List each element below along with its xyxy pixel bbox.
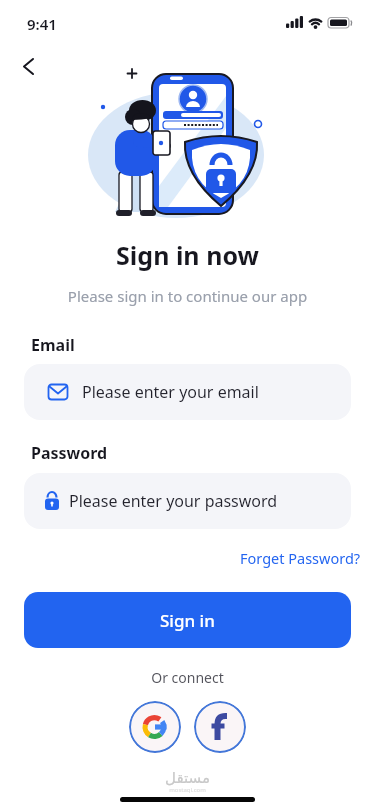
button[interactable]: Please enter your email xyxy=(24,364,351,420)
staticText: mostaql.com xyxy=(0,786,375,794)
button[interactable]: Forget Password? xyxy=(236,544,365,572)
staticText: Password xyxy=(31,442,108,464)
button[interactable]: Sign in xyxy=(24,592,351,648)
staticText: Please enter your email xyxy=(82,381,259,403)
button[interactable] xyxy=(129,701,181,753)
staticText: Email xyxy=(31,334,75,356)
staticText: Sign in xyxy=(160,609,215,632)
button[interactable] xyxy=(14,52,42,80)
button[interactable]: Please enter your password xyxy=(24,473,351,529)
staticText: Or connect xyxy=(0,668,375,687)
staticText: Please enter your password xyxy=(69,490,278,512)
staticText: Forget Password? xyxy=(240,548,361,568)
staticText: 9:41 xyxy=(27,14,57,34)
staticText: Sign in now xyxy=(0,238,375,272)
staticText: مستقل xyxy=(0,769,375,786)
staticText: Please sign in to continue our app xyxy=(0,286,375,306)
button[interactable] xyxy=(194,701,246,753)
